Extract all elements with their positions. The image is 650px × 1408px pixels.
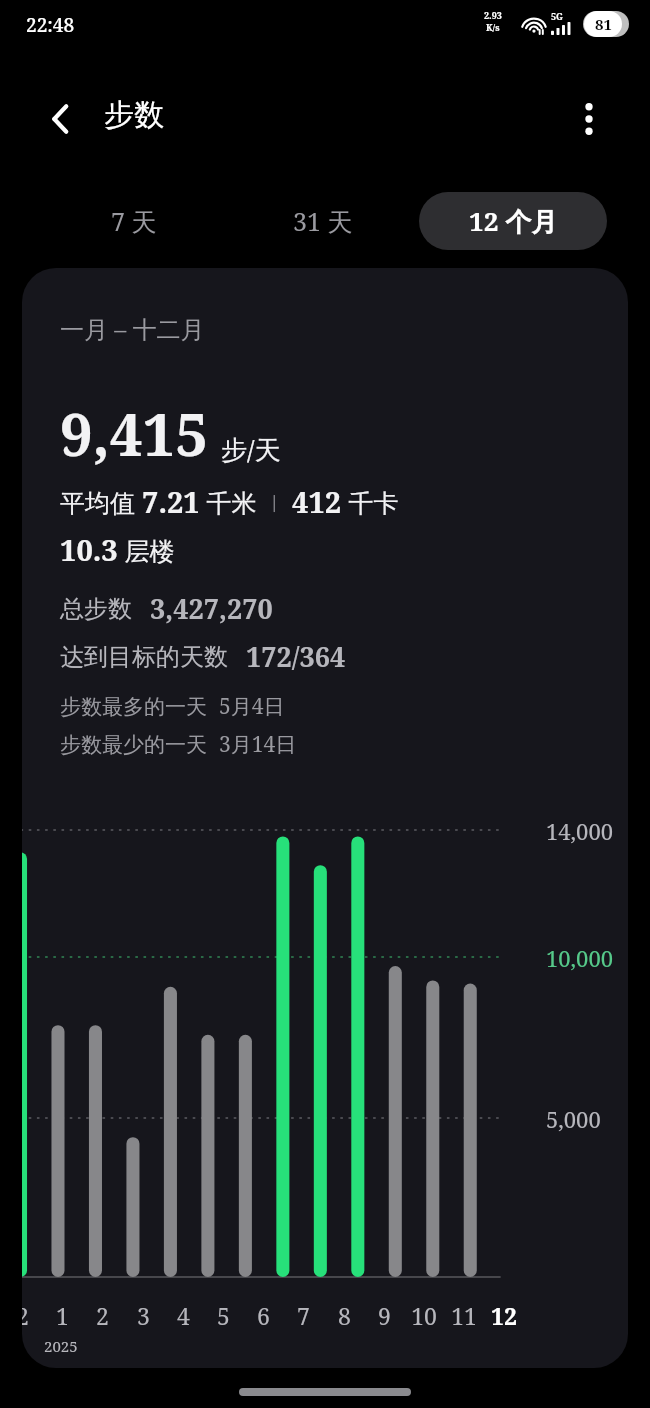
staticText: 6 xyxy=(257,1300,270,1331)
staticText: 步数最少的一天 xyxy=(60,732,207,758)
staticText: 81 xyxy=(595,14,612,34)
staticText: 11 xyxy=(451,1300,477,1331)
staticText: K/s xyxy=(486,21,500,33)
button[interactable]: 31 天 xyxy=(234,192,412,250)
staticText: 9,415 xyxy=(60,394,209,473)
staticText: 5月4日 xyxy=(219,692,285,721)
staticText: 步数 xyxy=(104,96,164,134)
staticText: 步/天 xyxy=(221,431,281,467)
staticText: 3,427,270 xyxy=(150,590,273,627)
staticText: 412 xyxy=(292,482,342,521)
staticText: 8 xyxy=(338,1300,351,1331)
staticText: 9 xyxy=(378,1300,391,1331)
staticText: 2025 xyxy=(44,1336,78,1356)
staticText: 层楼 xyxy=(118,533,175,567)
staticText: 千卡 xyxy=(342,485,399,519)
staticText: ｜ xyxy=(257,490,292,513)
staticText: 2 xyxy=(96,1300,109,1331)
staticText: 千米 xyxy=(200,485,257,519)
staticText: 一月 – 十二月 xyxy=(60,312,205,345)
staticText: 5,000 xyxy=(546,1104,601,1134)
staticText: 达到目标的天数 xyxy=(60,642,228,672)
staticText: 12 xyxy=(491,1300,517,1331)
staticText: 5 xyxy=(217,1300,230,1331)
staticText: 总步数 xyxy=(60,594,132,624)
staticText: 2.93 xyxy=(484,9,502,21)
staticText: 7 xyxy=(297,1300,310,1331)
staticText: 2 xyxy=(22,1300,29,1331)
button[interactable]: 一月 – 十二月 xyxy=(22,268,628,1368)
staticText: 7.21 xyxy=(142,482,200,521)
staticText: 22:48 xyxy=(26,12,75,38)
staticText: 10.3 xyxy=(60,530,118,569)
staticText: 172/364 xyxy=(246,638,346,675)
staticText: 1 xyxy=(56,1300,69,1331)
staticText: 10 xyxy=(411,1300,437,1331)
staticText: 14,000 xyxy=(546,816,613,846)
staticText: 12 个月 xyxy=(469,203,558,239)
staticText: 3 xyxy=(137,1300,150,1331)
staticText: 5G xyxy=(551,10,564,22)
staticText: 4 xyxy=(177,1300,190,1331)
button[interactable]: 12 个月 xyxy=(419,192,607,250)
button[interactable]: More options xyxy=(560,90,618,148)
button[interactable]: 7 天 xyxy=(50,192,218,250)
staticText: 步数最多的一天 xyxy=(60,694,207,720)
staticText: 平均值 xyxy=(60,485,142,519)
staticText: 31 天 xyxy=(293,204,353,238)
button[interactable]: Back xyxy=(32,90,90,148)
staticText: 7 天 xyxy=(111,204,157,238)
staticText: 10,000 xyxy=(546,943,613,973)
staticText: 3月14日 xyxy=(219,730,297,759)
